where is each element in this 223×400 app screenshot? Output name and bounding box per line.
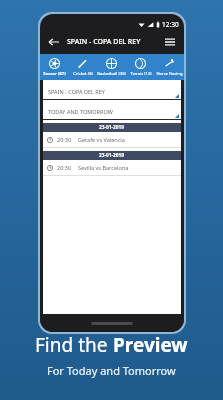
button[interactable]: Horse Racing <box>155 54 184 80</box>
button[interactable]: Basketball (36) <box>97 54 126 80</box>
button[interactable]: 20:30 <box>43 132 181 147</box>
staticText: Horse Racing <box>156 71 183 77</box>
staticText: Soccer (67) <box>43 71 66 77</box>
staticText: SPAIN - COPA DEL REY <box>48 88 105 95</box>
staticText: Tennis (13) <box>130 71 152 77</box>
button[interactable]: Soccer (67) <box>40 54 68 80</box>
staticText: 20:30 <box>57 164 72 171</box>
staticText: Basketball (36) <box>97 71 126 77</box>
button[interactable]: Back <box>46 34 62 50</box>
button[interactable]: Cricket (6) <box>68 54 97 80</box>
button[interactable]: TODAY AND TOMORROW <box>43 103 181 120</box>
button[interactable]: SPAIN - COPA DEL REY <box>43 83 181 100</box>
staticText: TODAY AND TOMORROW <box>48 108 113 115</box>
staticText: Find the <box>35 332 113 358</box>
staticText: 23-01-2019 <box>99 152 125 159</box>
button[interactable]: Menu <box>162 34 178 50</box>
staticText: SPAIN - COPA DEL REY <box>67 37 141 47</box>
staticText: 20:30 <box>57 136 72 143</box>
staticText: 12:30 <box>162 20 179 29</box>
staticText: For Today and Tomorrow <box>47 363 176 378</box>
staticText: 23-01-2019 <box>99 124 125 131</box>
staticText: Preview <box>113 332 188 358</box>
staticText: Sevilla vs Barcelona <box>78 164 129 171</box>
staticText: Cricket (6) <box>73 71 93 77</box>
button[interactable]: 20:30 <box>43 160 181 175</box>
button[interactable]: Tennis (13) <box>126 54 155 80</box>
staticText: Getafe vs Valencia <box>78 136 125 143</box>
